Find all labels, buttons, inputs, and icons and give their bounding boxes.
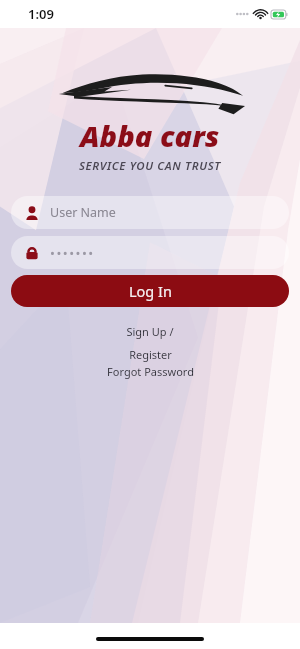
staticText: Forgot Password — [107, 364, 194, 379]
other: Home indicator — [96, 637, 204, 641]
staticText: 1:09 — [28, 5, 54, 23]
button[interactable]: Register — [129, 347, 172, 362]
staticText: Log In — [129, 281, 172, 301]
button[interactable]: Forgot Password — [107, 364, 194, 379]
staticText: SERVICE YOU CAN TRUST — [79, 158, 221, 174]
button[interactable]: Sign Up / — [126, 324, 174, 339]
staticText: ••••••• — [50, 244, 95, 262]
staticText: Sign Up / — [126, 324, 174, 339]
button[interactable]: User Name — [11, 196, 289, 229]
button[interactable]: Log In — [11, 275, 289, 307]
button[interactable]: ••••••• — [11, 236, 289, 269]
staticText: Register — [129, 347, 172, 362]
staticText: User Name — [50, 204, 116, 221]
staticText: Abba cars — [80, 116, 220, 155]
